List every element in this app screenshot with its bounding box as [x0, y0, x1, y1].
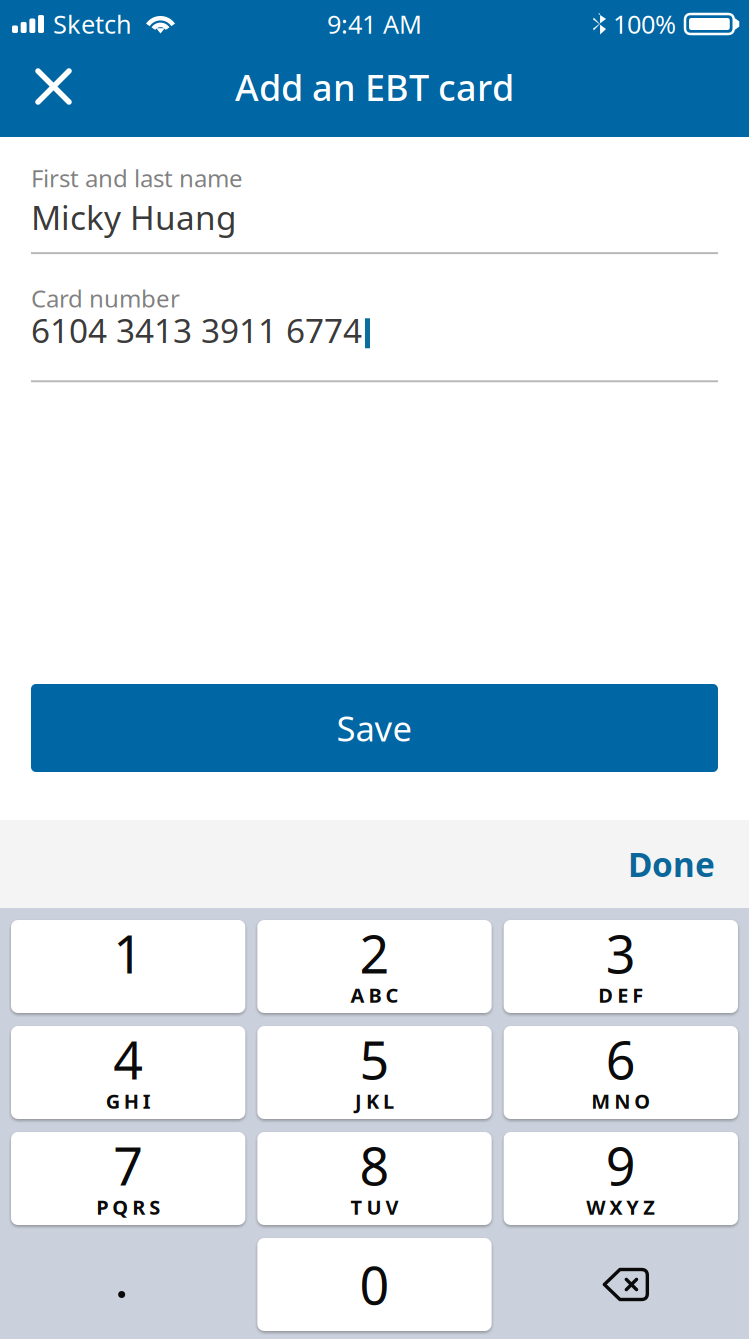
button[interactable]: Delete — [504, 1238, 738, 1331]
staticText: Add an EBT card — [235, 63, 514, 111]
staticText: First and last name — [31, 162, 243, 194]
staticText: GHI — [106, 1088, 151, 1114]
button[interactable]: Done — [611, 832, 732, 896]
button[interactable]: Save — [31, 684, 718, 772]
staticText: Sketch — [53, 7, 132, 41]
button[interactable]: 0 — [257, 1238, 492, 1331]
staticText: 3 — [606, 919, 636, 988]
button[interactable]: 5 — [257, 1026, 492, 1119]
staticText: DEF — [598, 982, 643, 1008]
staticText: 7 — [113, 1131, 143, 1200]
staticText: 100% — [613, 7, 676, 41]
staticText: 5 — [359, 1025, 389, 1094]
staticText: 0 — [359, 1250, 389, 1319]
button[interactable]: 8 — [257, 1132, 492, 1225]
staticText: WXYZ — [586, 1194, 655, 1220]
staticText: 4 — [113, 1025, 143, 1094]
staticText: 1 — [113, 919, 143, 988]
button[interactable]: 9 — [504, 1132, 738, 1225]
staticText: Card number — [31, 282, 180, 314]
staticText: MNO — [591, 1088, 650, 1114]
staticText: TUV — [350, 1194, 398, 1220]
staticText: Save — [336, 705, 412, 751]
staticText: 6104 3413 3911 6774 — [31, 308, 362, 352]
button[interactable]: Decimal point — [11, 1238, 245, 1331]
staticText: 2 — [359, 919, 389, 988]
staticText: Done — [628, 842, 715, 886]
button[interactable]: 3 — [504, 920, 738, 1013]
staticText: ABC — [350, 982, 398, 1008]
staticText: JKL — [355, 1088, 394, 1114]
staticText: 6 — [606, 1025, 636, 1094]
staticText: 9:41 AM — [327, 7, 422, 41]
button[interactable]: 7 — [11, 1132, 245, 1225]
button[interactable]: Close — [0, 57, 93, 128]
staticText: 9 — [606, 1131, 636, 1200]
staticText: 8 — [359, 1131, 389, 1200]
staticText: PQRS — [96, 1194, 160, 1220]
staticText: Micky Huang — [31, 195, 237, 239]
button[interactable]: 1 — [11, 920, 245, 1013]
button[interactable]: 2 — [257, 920, 492, 1013]
button[interactable]: 6 — [504, 1026, 738, 1119]
button[interactable]: 4 — [11, 1026, 245, 1119]
